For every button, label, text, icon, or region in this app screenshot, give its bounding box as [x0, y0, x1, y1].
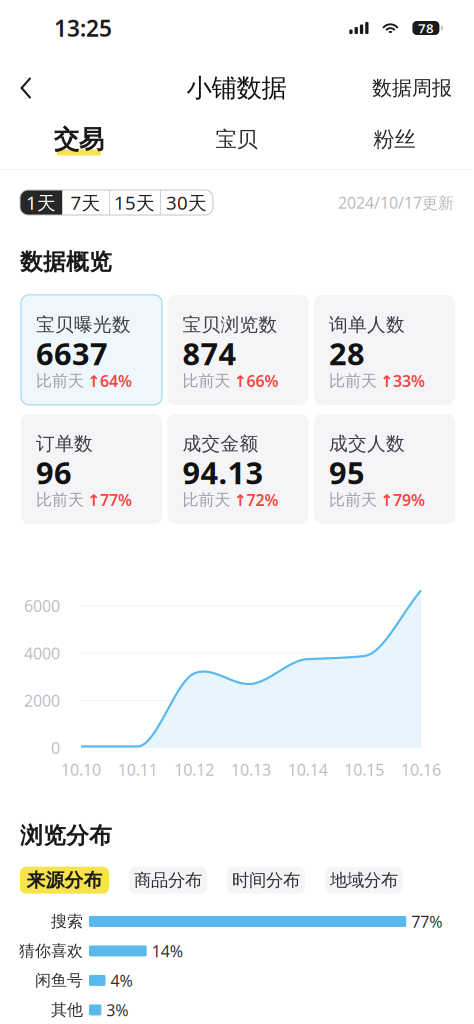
- staticText: 2024/10/17更新: [338, 192, 454, 213]
- staticText: 0: [51, 737, 60, 758]
- staticText: ↑64%: [87, 370, 132, 391]
- staticText: 95: [329, 452, 365, 493]
- button[interactable]: 地域分布: [325, 867, 403, 894]
- staticText: 宝贝: [215, 126, 257, 153]
- staticText: 比前天: [329, 371, 377, 391]
- staticText: 成交人数: [329, 432, 405, 455]
- staticText: 时间分布: [232, 869, 300, 891]
- staticText: 2000: [24, 690, 60, 711]
- staticText: 10.11: [118, 759, 158, 780]
- staticText: 10.15: [344, 759, 384, 780]
- staticText: 4%: [110, 970, 132, 991]
- button[interactable]: 来源分布: [20, 867, 109, 894]
- staticText: ↑72%: [233, 489, 278, 510]
- staticText: 比前天: [329, 490, 377, 510]
- staticText: 78: [418, 19, 434, 37]
- staticText: 6637: [36, 333, 108, 374]
- staticText: ↑66%: [233, 370, 278, 391]
- staticText: 其他: [51, 1000, 83, 1020]
- button[interactable]: 商品分布: [129, 867, 207, 894]
- button[interactable]: 成交金额: [167, 414, 308, 524]
- staticText: 地域分布: [330, 869, 398, 891]
- staticText: ↑79%: [380, 489, 425, 510]
- staticText: 闲鱼号: [35, 971, 83, 990]
- staticText: ↑77%: [87, 489, 132, 510]
- staticText: 1天: [26, 190, 56, 215]
- staticText: 数据周报: [372, 76, 452, 100]
- staticText: 13:25: [54, 13, 112, 43]
- button[interactable]: 时间分布: [227, 867, 305, 894]
- staticText: 数据概览: [20, 248, 112, 276]
- button[interactable]: 宝贝浏览数: [167, 295, 308, 405]
- staticText: 浏览分布: [20, 822, 112, 850]
- staticText: ↑33%: [380, 370, 425, 391]
- staticText: 比前天: [182, 490, 230, 510]
- staticText: 7天: [70, 190, 100, 215]
- button[interactable]: 询单人数: [314, 295, 455, 405]
- button[interactable]: 30天: [160, 190, 213, 215]
- staticText: 10.13: [231, 759, 271, 780]
- staticText: 成交金额: [182, 432, 258, 455]
- button[interactable]: 成交人数: [314, 414, 455, 524]
- staticText: 比前天: [36, 490, 84, 510]
- staticText: 10.14: [288, 759, 328, 780]
- button[interactable]: 15天: [109, 190, 160, 215]
- button[interactable]: 1天: [20, 190, 62, 215]
- button[interactable]: 数据周报: [360, 56, 473, 104]
- staticText: 宝贝曝光数: [36, 313, 131, 336]
- staticText: 交易: [54, 124, 104, 155]
- staticText: 比前天: [36, 371, 84, 391]
- staticText: 94.13: [182, 452, 263, 493]
- staticText: 猜你喜欢: [19, 941, 83, 961]
- staticText: 商品分布: [134, 869, 202, 891]
- staticText: 宝贝浏览数: [182, 313, 277, 336]
- staticText: 10.10: [61, 759, 101, 780]
- button[interactable]: 粉丝: [315, 104, 473, 169]
- staticText: 10.12: [174, 759, 214, 780]
- staticText: 订单数: [36, 432, 93, 455]
- button[interactable]: 宝贝: [158, 104, 315, 169]
- button[interactable]: 返回: [0, 56, 48, 104]
- staticText: 28: [329, 333, 365, 374]
- staticText: 14%: [152, 940, 183, 961]
- button[interactable]: 宝贝曝光数: [21, 295, 162, 405]
- staticText: 比前天: [182, 371, 230, 391]
- staticText: 6000: [24, 595, 60, 616]
- staticText: 874: [182, 333, 236, 374]
- staticText: 96: [36, 452, 72, 493]
- staticText: 来源分布: [26, 869, 102, 892]
- staticText: 搜索: [51, 912, 83, 931]
- staticText: 77%: [411, 911, 442, 932]
- staticText: 3%: [106, 999, 128, 1020]
- staticText: 粉丝: [373, 126, 415, 153]
- staticText: 10.16: [401, 759, 441, 780]
- staticText: 4000: [24, 643, 60, 664]
- button[interactable]: 7天: [62, 190, 109, 215]
- staticText: 询单人数: [329, 313, 405, 336]
- staticText: 30天: [166, 190, 207, 215]
- staticText: 15天: [114, 190, 155, 215]
- button[interactable]: 订单数: [21, 414, 162, 524]
- staticText: 小铺数据: [186, 72, 286, 103]
- button[interactable]: 交易: [0, 104, 158, 169]
